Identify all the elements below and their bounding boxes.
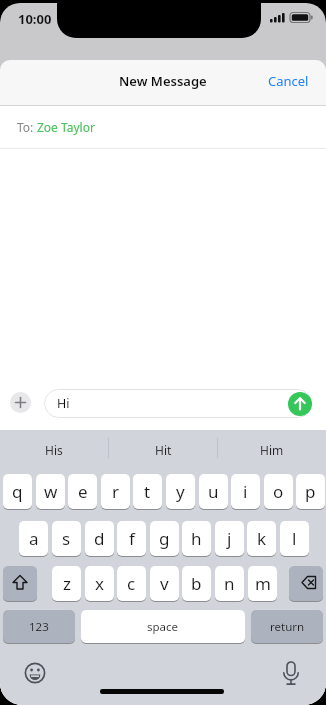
button[interactable]: u [199, 474, 228, 509]
button[interactable]: z [52, 566, 81, 601]
button[interactable]: j [215, 521, 244, 556]
button[interactable]: t [133, 474, 162, 509]
staticText: y [176, 480, 185, 503]
button[interactable]: His [0, 432, 108, 468]
staticText: Zoe Taylor [37, 119, 95, 135]
staticText: To: [17, 119, 37, 135]
staticText: w [44, 480, 58, 503]
staticText: e [78, 480, 88, 503]
staticText: Cancel [268, 72, 309, 90]
button[interactable]: d [85, 521, 114, 556]
staticText: j [227, 527, 232, 550]
button[interactable]: c [117, 566, 146, 601]
button[interactable]: return [251, 610, 323, 643]
staticText: t [144, 480, 151, 503]
staticText: c [127, 572, 136, 595]
staticText: f [129, 527, 135, 550]
staticText: Hi [57, 395, 70, 412]
button[interactable]: Cancel [268, 60, 318, 102]
staticText: r [112, 480, 120, 503]
staticText: Him [260, 442, 284, 458]
button[interactable] [10, 392, 31, 413]
button[interactable]: o [264, 474, 293, 509]
staticText: g [159, 527, 170, 550]
button[interactable]: 123 [3, 610, 75, 643]
staticText: New Message [119, 72, 207, 90]
staticText: x [95, 572, 104, 595]
button[interactable]: i [231, 474, 260, 509]
button[interactable]: n [215, 566, 244, 601]
button[interactable]: h [182, 521, 211, 556]
button[interactable]: f [117, 521, 146, 556]
button[interactable] [278, 658, 304, 684]
button[interactable]: m [248, 566, 277, 601]
staticText: n [224, 572, 235, 595]
button[interactable]: b [182, 566, 211, 601]
button[interactable]: q [3, 474, 32, 509]
staticText: z [63, 572, 71, 595]
staticText: h [191, 527, 202, 550]
staticText: a [29, 527, 39, 550]
staticText: q [12, 480, 23, 503]
button[interactable]: w [36, 474, 65, 509]
staticText: k [257, 527, 267, 550]
button[interactable]: r [101, 474, 130, 509]
staticText: p [305, 480, 316, 503]
staticText: s [62, 527, 71, 550]
button[interactable]: k [247, 521, 276, 556]
staticText: m [255, 572, 271, 595]
staticText: 10:00 [18, 10, 52, 28]
button[interactable] [289, 566, 323, 601]
button[interactable]: a [19, 521, 48, 556]
button[interactable]: g [150, 521, 179, 556]
button[interactable]: Him [218, 432, 326, 468]
staticText: o [273, 480, 284, 503]
button[interactable]: v [150, 566, 179, 601]
button[interactable]: l [280, 521, 309, 556]
staticText: i [243, 480, 248, 503]
staticText: b [191, 572, 202, 595]
staticText: Hit [155, 442, 172, 458]
button[interactable]: x [85, 566, 114, 601]
button[interactable]: s [52, 521, 81, 556]
staticText: u [208, 480, 219, 503]
staticText: space [147, 619, 179, 635]
staticText: 123 [29, 619, 49, 635]
button[interactable]: Hit [109, 432, 217, 468]
staticText: l [292, 527, 297, 550]
button[interactable]: y [166, 474, 195, 509]
staticText: return [270, 619, 305, 635]
staticText: v [160, 572, 169, 595]
staticText: His [45, 442, 63, 458]
button[interactable]: space [81, 610, 245, 643]
button[interactable]: Hi [44, 389, 312, 418]
button[interactable]: e [68, 474, 97, 509]
button[interactable] [3, 566, 37, 601]
button[interactable] [21, 659, 49, 687]
button[interactable]: p [296, 474, 325, 509]
staticText: d [94, 527, 105, 550]
button[interactable]: To: [0, 106, 326, 148]
button[interactable] [288, 392, 312, 416]
